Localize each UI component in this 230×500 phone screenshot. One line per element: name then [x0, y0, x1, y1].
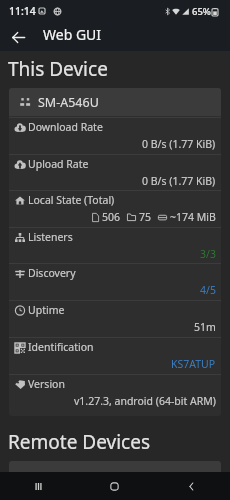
staticText: 0 B/s (1.77 KiB) [142, 137, 216, 151]
button[interactable]: Uptime [9, 300, 221, 337]
button[interactable]: Discovery [9, 263, 221, 300]
staticText: This Device [8, 56, 108, 76]
button[interactable]: Home [76, 472, 153, 500]
staticText: Listeners [28, 230, 73, 244]
staticText: 75 [139, 210, 152, 224]
staticText: 11:14 [9, 4, 36, 18]
staticText: Local State (Total) [28, 193, 115, 207]
staticText: 51m [194, 320, 216, 334]
staticText: Upload Rate [28, 157, 89, 171]
staticText: ~174 MiB [170, 210, 216, 224]
staticText: Download Rate [28, 120, 103, 134]
staticText: KS7ATUP [171, 357, 216, 371]
staticText: 65% [192, 5, 211, 18]
staticText: 3/3 [200, 247, 216, 261]
staticText: Version [28, 377, 65, 391]
button[interactable]: Navigate back [5, 24, 31, 50]
button[interactable]: Version [9, 374, 221, 415]
button[interactable]: Local State (Total) [9, 190, 221, 227]
button[interactable]: Upload Rate [9, 154, 221, 190]
button[interactable]: SM-A546U [9, 88, 221, 116]
button[interactable]: Download Rate [9, 117, 221, 154]
staticText: Remote Devices [8, 429, 151, 449]
staticText: 0 B/s (1.77 KiB) [142, 174, 216, 188]
button[interactable]: Listeners [9, 227, 221, 263]
staticText: Web GUI [43, 25, 102, 44]
button[interactable]: Identification [9, 337, 221, 374]
button[interactable]: Back [153, 472, 230, 500]
button[interactable]: Recent apps [0, 472, 76, 500]
staticText: Discovery [28, 266, 76, 280]
staticText: SM-A546U [38, 94, 99, 111]
staticText: v1.27.3, android (64-bit ARM) [74, 394, 216, 408]
staticText: 506 [102, 210, 121, 224]
staticText: Uptime [28, 303, 65, 317]
staticText: 4/5 [200, 283, 216, 297]
button[interactable] [9, 461, 221, 491]
staticText: Identification [28, 340, 94, 354]
